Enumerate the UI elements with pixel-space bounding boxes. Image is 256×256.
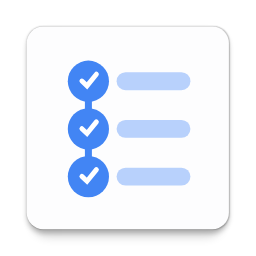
button[interactable]: Checklist app icon — [0, 0, 256, 256]
